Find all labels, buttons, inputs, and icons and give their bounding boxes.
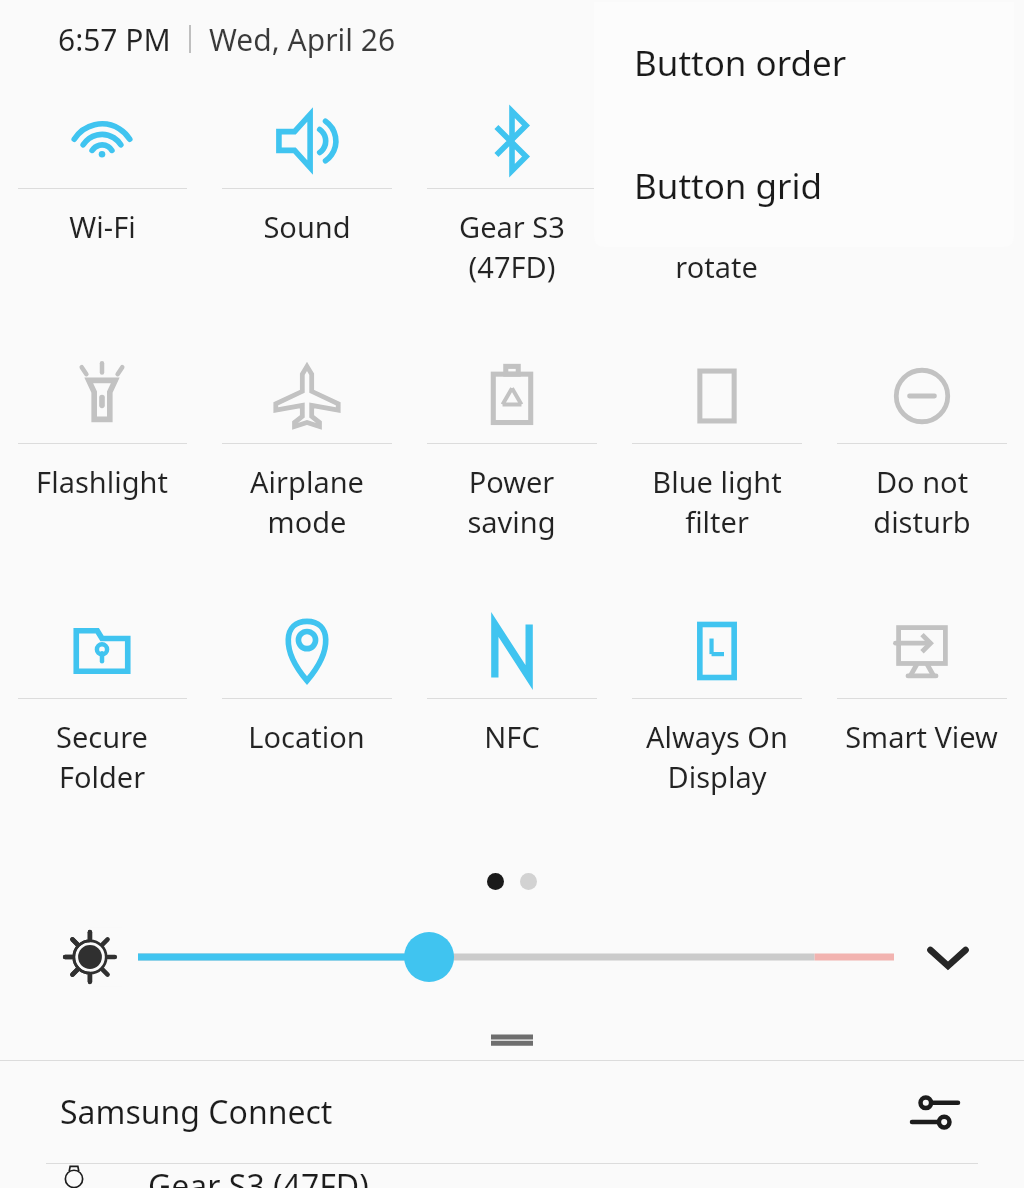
button[interactable]: Button grid xyxy=(594,124,1014,247)
staticText: 6:57 PM xyxy=(58,19,171,60)
button[interactable]: Do not disturb xyxy=(819,347,1024,602)
button[interactable]: Blue light filter xyxy=(614,347,819,602)
button[interactable]: Gear S3 (47FD) xyxy=(0,1164,1024,1188)
staticText: Button grid xyxy=(634,162,823,210)
button[interactable]: Brightness xyxy=(52,919,128,995)
button[interactable]: Always On Display xyxy=(614,602,819,857)
button[interactable]: Samsung Connect xyxy=(0,1061,1024,1163)
button[interactable]: Wi-Fi xyxy=(0,92,204,347)
button[interactable]: Smart View xyxy=(819,602,1024,857)
button[interactable]: Gear S3 (47FD) xyxy=(409,92,614,347)
button[interactable]: Airplane mode xyxy=(204,347,409,602)
button[interactable]: Sound xyxy=(204,92,409,347)
button[interactable]: Secure Folder xyxy=(0,602,204,857)
staticText: Always On Display xyxy=(646,717,788,797)
staticText: NFC xyxy=(484,717,540,756)
staticText: Do not disturb xyxy=(873,462,971,542)
button[interactable]: Flashlight xyxy=(0,347,204,602)
staticText: Location xyxy=(248,717,365,756)
button[interactable]: Auto rotate xyxy=(614,92,819,347)
staticText: Gear S3 (47FD) xyxy=(148,1164,369,1188)
button[interactable]: Button order xyxy=(594,2,1014,124)
button[interactable]: Location xyxy=(204,602,409,857)
staticText: Blue light filter xyxy=(652,462,782,542)
staticText: Sound xyxy=(263,207,351,246)
button[interactable]: Power saving xyxy=(409,347,614,602)
button[interactable]: Settings xyxy=(904,1081,966,1143)
staticText: Wed, April 26 xyxy=(209,19,396,60)
staticText: Auto rotate xyxy=(675,207,758,287)
button[interactable]: NFC xyxy=(409,602,614,857)
staticText: Power saving xyxy=(467,462,556,542)
staticText: Airplane mode xyxy=(250,462,364,542)
button[interactable]: Expand xyxy=(912,921,984,993)
staticText: Secure Folder xyxy=(56,717,148,797)
staticText: Flashlight xyxy=(36,462,168,501)
staticText: Smart View xyxy=(845,717,998,756)
staticText: Button order xyxy=(634,39,847,87)
staticText: Gear S3 (47FD) xyxy=(459,207,565,287)
staticText: Wi-Fi xyxy=(69,207,136,246)
staticText: Samsung Connect xyxy=(60,1090,333,1134)
button[interactable] xyxy=(138,926,894,988)
